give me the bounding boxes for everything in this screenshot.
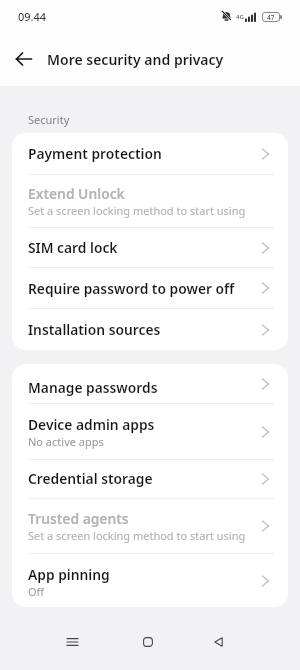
staticText: Payment protection [28, 144, 162, 163]
staticText: 4G [236, 13, 244, 21]
button[interactable]: Installation sources [12, 309, 288, 350]
staticText: Set a screen locking method to start usi… [28, 203, 246, 218]
staticText: Security [28, 112, 70, 127]
staticText: More security and privacy [47, 50, 224, 69]
staticText: Set a screen locking method to start usi… [28, 528, 246, 543]
staticText: Manage passwords [28, 378, 158, 397]
button[interactable]: Require password to power off [12, 268, 288, 308]
staticText: 09.44 [18, 9, 47, 24]
staticText: Off [28, 584, 45, 599]
staticText: SIM card lock [28, 238, 118, 257]
button[interactable]: Payment protection [12, 133, 288, 174]
button[interactable] [134, 628, 162, 656]
staticText: Credential storage [28, 469, 153, 488]
button[interactable]: Manage passwords [12, 364, 288, 403]
button[interactable] [204, 628, 232, 656]
button[interactable]: Credential storage [12, 460, 288, 498]
button[interactable]: Trusted agents [12, 499, 288, 553]
button[interactable]: Extend Unlock [12, 175, 288, 227]
staticText: Require password to power off [28, 279, 235, 298]
button[interactable]: SIM card lock [12, 228, 288, 267]
button[interactable] [8, 43, 40, 75]
staticText: Installation sources [28, 320, 161, 339]
button[interactable] [58, 628, 86, 656]
button[interactable]: Device admin apps [12, 404, 288, 459]
button[interactable]: App pinning [12, 554, 288, 607]
staticText: No active apps [28, 434, 104, 449]
staticText: 47 [267, 13, 275, 22]
staticText: App pinning [28, 565, 110, 584]
staticText: Device admin apps [28, 415, 155, 434]
staticText: Extend Unlock [28, 184, 125, 203]
staticText: Trusted agents [28, 509, 129, 528]
